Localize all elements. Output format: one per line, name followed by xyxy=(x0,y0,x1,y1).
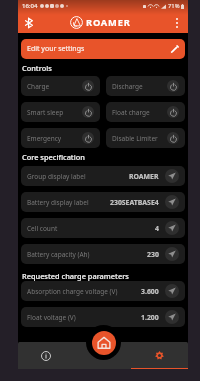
button[interactable]: Absorption charge voltage (V) xyxy=(21,281,185,301)
button[interactable]: Float voltage (V) xyxy=(21,307,185,327)
staticText: Controls xyxy=(22,63,52,73)
staticText: Core specification xyxy=(22,152,85,162)
button[interactable]: Battery capacity (Ah) xyxy=(21,244,185,264)
staticText: Float voltage (V) xyxy=(27,313,76,322)
button[interactable]: Emergency xyxy=(21,128,100,148)
staticText: 230SEATBASE4 xyxy=(110,198,159,207)
button[interactable]: Charge xyxy=(21,76,100,96)
staticText: Cell count xyxy=(27,224,58,233)
staticText: Edit your settings xyxy=(27,44,85,54)
staticText: ROAMER xyxy=(86,16,131,29)
staticText: 4 xyxy=(155,224,159,233)
staticText: Requested charge parameters xyxy=(22,271,129,281)
button[interactable]: More options xyxy=(170,16,184,30)
button[interactable]: Discharge xyxy=(106,76,185,96)
staticText: Float charge xyxy=(112,108,150,117)
staticText: ROAMER xyxy=(129,172,159,181)
button[interactable]: Battery display label xyxy=(21,192,185,212)
staticText: 71% xyxy=(168,2,180,10)
button[interactable]: Edit your settings xyxy=(21,39,185,59)
staticText: Group display label xyxy=(27,172,86,181)
staticText: Smart sleep xyxy=(27,108,64,117)
staticText: Emergency xyxy=(27,134,62,143)
staticText: 1.200 xyxy=(141,313,159,322)
staticText: Battery display label xyxy=(27,198,89,207)
staticText: 16:04 xyxy=(22,2,38,10)
button[interactable]: Float charge xyxy=(106,102,185,122)
button[interactable]: Bluetooth xyxy=(22,16,36,30)
staticText: Battery capacity (Ah) xyxy=(27,250,90,259)
staticText: 3.600 xyxy=(141,287,159,296)
staticText: 230 xyxy=(147,250,159,259)
staticText: Charge xyxy=(27,82,50,91)
staticText: Disable Limiter xyxy=(112,134,158,143)
button[interactable]: Disable Limiter xyxy=(106,128,185,148)
button[interactable]: Cell count xyxy=(21,218,185,238)
button[interactable]: Info xyxy=(18,342,74,369)
button[interactable]: Settings xyxy=(131,342,188,369)
staticText: Discharge xyxy=(112,82,143,91)
staticText: Absorption charge voltage (V) xyxy=(27,287,118,296)
button[interactable]: Smart sleep xyxy=(21,102,100,122)
button[interactable]: Group display label xyxy=(21,166,185,186)
button[interactable]: Home xyxy=(92,331,116,355)
